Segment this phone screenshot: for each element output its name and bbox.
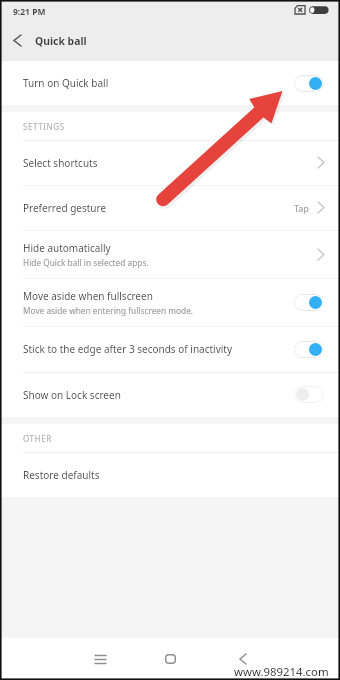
staticText: Show on Lock screen <box>23 388 121 402</box>
staticText: Quick ball <box>35 34 87 48</box>
staticText: www.989214.com <box>234 664 329 680</box>
staticText: Restore defaults <box>23 468 100 482</box>
button[interactable]: Home <box>135 638 205 680</box>
button[interactable]: On <box>294 294 324 311</box>
button[interactable]: Select shortcuts <box>0 140 340 185</box>
button[interactable]: Show on Lock screen <box>0 372 340 417</box>
staticText: Select shortcuts <box>23 156 98 170</box>
button[interactable]: Restore defaults <box>0 452 340 497</box>
staticText: Tap <box>294 202 309 214</box>
button[interactable]: Off <box>294 386 324 403</box>
staticText: Stick to the edge after 3 seconds of ina… <box>23 342 233 356</box>
staticText: Turn on Quick ball <box>23 76 109 90</box>
button[interactable]: Back <box>0 22 35 59</box>
button[interactable]: Preferred gesture <box>0 185 340 230</box>
staticText: Move aside when entering fullscreen mode… <box>23 305 194 316</box>
button[interactable]: Turn on Quick ball <box>0 61 340 105</box>
staticText: 9:21 PM <box>13 6 46 18</box>
button[interactable]: Menu <box>65 638 135 680</box>
staticText: Hide Quick ball in selected apps. <box>23 257 149 268</box>
staticText: Hide automatically <box>23 241 111 255</box>
staticText: Preferred gesture <box>23 201 107 215</box>
button[interactable]: On <box>294 75 324 92</box>
button[interactable]: Move aside when fullscreen <box>0 278 340 326</box>
button[interactable]: Hide automatically <box>0 230 340 278</box>
button[interactable]: On <box>294 341 324 358</box>
staticText: OTHER <box>23 433 52 444</box>
staticText: SETTINGS <box>23 121 65 132</box>
staticText: Move aside when fullscreen <box>23 289 153 303</box>
button[interactable]: Back <box>205 638 275 680</box>
button[interactable]: Stick to the edge after 3 seconds of ina… <box>0 326 340 372</box>
